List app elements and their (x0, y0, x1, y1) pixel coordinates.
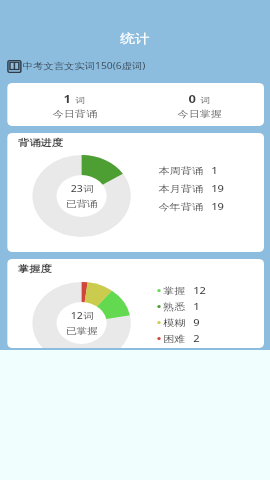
button[interactable]: 掌握度 (7, 259, 264, 348)
staticText: 模糊 (163, 317, 186, 329)
staticText: 统计 (120, 31, 150, 47)
button[interactable]: 1 (7, 83, 264, 126)
staticText: 1 (193, 300, 200, 313)
button[interactable]: 0 (136, 83, 264, 126)
staticText: 1 (211, 164, 218, 177)
staticText: 今日背诵 (53, 108, 97, 120)
staticText: 今日掌握 (178, 108, 222, 120)
staticText: 19 (211, 182, 224, 195)
staticText: 熟悉 (163, 301, 186, 313)
staticText: 9 (193, 316, 200, 329)
button[interactable]: Book (7, 58, 270, 74)
staticText: 背诵进度 (18, 137, 64, 149)
staticText: 12 (193, 284, 206, 297)
staticText: 掌握 (163, 285, 186, 297)
staticText: 已掌握 (66, 326, 98, 337)
staticText: 词 (200, 95, 211, 105)
staticText: 1 (64, 91, 72, 106)
staticText: 掌握度 (18, 263, 52, 275)
staticText: 本周背诵 (158, 165, 204, 177)
staticText: 今年背诵 (158, 201, 204, 213)
button[interactable]: 背诵进度 (7, 133, 264, 252)
button[interactable]: 1 (13, 83, 136, 126)
other: Book (7, 60, 22, 73)
staticText: 已背诵 (66, 199, 98, 210)
staticText: 中考文言文实词150(6虚词) (23, 60, 146, 72)
staticText: 19 (211, 200, 224, 213)
staticText: 2 (193, 332, 200, 345)
staticText: 12词 (71, 310, 94, 322)
staticText: 23词 (71, 183, 94, 195)
staticText: 词 (76, 95, 86, 105)
staticText: 困难 (163, 333, 186, 345)
staticText: 0 (188, 91, 197, 106)
staticText: 本月背诵 (158, 183, 204, 195)
